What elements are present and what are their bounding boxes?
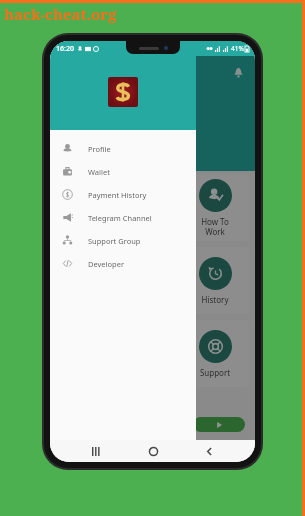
button[interactable]: Developer	[50, 252, 196, 275]
staticText: Telegram Channel	[88, 213, 152, 223]
staticText: Developer	[88, 259, 125, 269]
button[interactable]: Profile	[50, 137, 196, 160]
button[interactable]: Telegram Channel	[50, 206, 196, 229]
staticText: hack-cheat.org	[4, 4, 117, 24]
staticText: Support Group	[88, 236, 141, 246]
staticText: Wallet	[88, 167, 110, 177]
button[interactable]: Notifications	[229, 63, 247, 81]
staticText: How To Work	[193, 216, 237, 237]
button[interactable]: Home	[142, 440, 164, 462]
staticText: Payment History	[88, 190, 147, 200]
staticText: History	[193, 294, 237, 305]
staticText: 12000	[60, 141, 95, 157]
button[interactable]: Recents	[85, 440, 107, 462]
button[interactable]: Wallet	[50, 160, 196, 183]
staticText: 41%	[231, 44, 244, 53]
button[interactable]: Support Group	[50, 229, 196, 252]
button[interactable]: Support	[56, 320, 249, 387]
button[interactable]: History	[56, 247, 249, 314]
staticText: 16:20	[56, 44, 74, 54]
button[interactable]: How To Work	[56, 174, 249, 241]
staticText: Profile	[88, 144, 111, 154]
button[interactable]: Back	[198, 440, 220, 462]
button[interactable]: Continue	[193, 417, 245, 432]
staticText: Support	[193, 367, 237, 378]
button[interactable]: Payment History	[50, 183, 196, 206]
